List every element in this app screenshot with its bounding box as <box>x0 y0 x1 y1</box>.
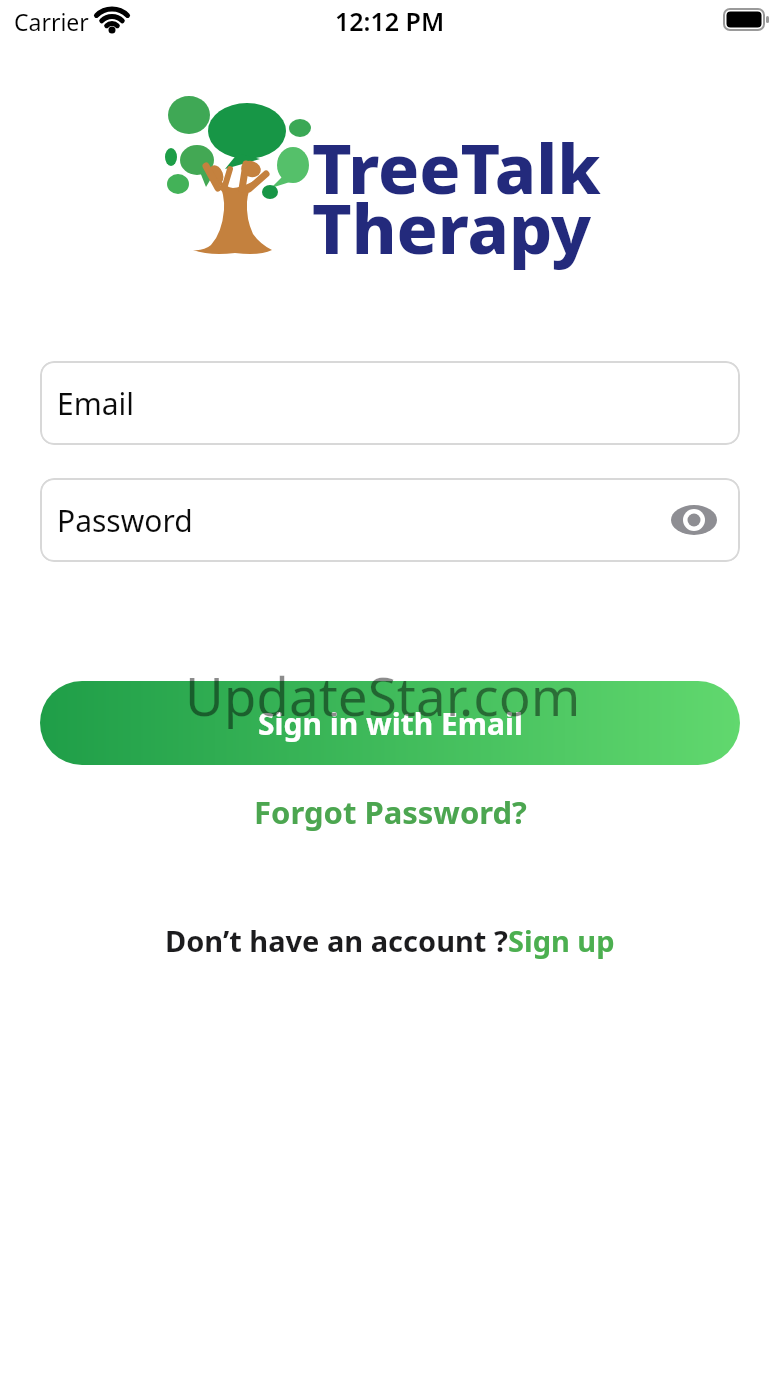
staticText: Don’t have an account ? <box>165 921 508 960</box>
staticText: 12:12 PM <box>335 4 445 38</box>
staticText: TreeTalk <box>312 121 601 214</box>
staticText: UpdateStar.com <box>185 659 581 731</box>
staticText: Password <box>57 500 193 541</box>
button[interactable]: Sign in with Email <box>40 681 740 765</box>
button[interactable]: Forgot Password? <box>254 791 527 833</box>
staticText: Sign in with Email <box>258 703 523 744</box>
staticText: Sign up <box>508 921 615 960</box>
staticText: Carrier <box>14 6 89 37</box>
button[interactable] <box>670 502 718 538</box>
staticText: Email <box>57 383 135 424</box>
button[interactable]: Email <box>40 361 740 445</box>
button[interactable]: Sign up <box>508 921 615 960</box>
staticText: Therapy <box>312 181 592 274</box>
button[interactable]: Password <box>40 478 740 562</box>
staticText: Forgot Password? <box>254 791 527 833</box>
